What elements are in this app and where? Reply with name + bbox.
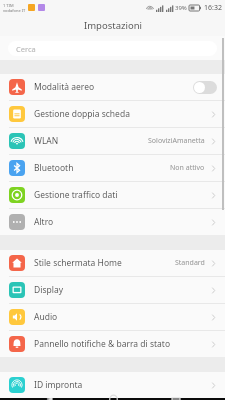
staticText: Stile schermata Home — [34, 257, 122, 269]
button[interactable]: Home — [98, 398, 128, 400]
staticText: Standard — [175, 258, 205, 268]
staticText: ID impronta — [34, 379, 83, 391]
button[interactable]: Display — [0, 277, 225, 303]
staticText: Audio — [34, 311, 58, 323]
staticText: 39% — [175, 4, 187, 12]
button[interactable]: Bluetooth — [0, 155, 225, 181]
button[interactable]: Recent apps — [161, 398, 191, 400]
staticText: Altro — [34, 216, 54, 228]
staticText: Gestione doppia scheda — [34, 108, 130, 120]
button[interactable]: Gestione doppia scheda — [0, 101, 225, 127]
staticText: 16:32 — [204, 3, 222, 13]
staticText: Bluetooth — [34, 162, 74, 174]
staticText: Gestione traffico dati — [34, 189, 118, 201]
staticText: Modalità aereo — [34, 81, 95, 93]
staticText: WLAN — [34, 135, 59, 147]
staticText: Pannello notifiche & barra di stato — [34, 338, 171, 350]
button[interactable]: Back — [34, 398, 64, 400]
staticText: Cerca — [16, 44, 36, 54]
button[interactable]: Gestione traffico dati — [0, 182, 225, 208]
staticText: Non attivo — [170, 163, 205, 173]
staticText: vodafone IT — [3, 8, 26, 13]
button[interactable]: Modalità aereo — [0, 74, 225, 100]
staticText: Impostazioni — [84, 19, 142, 32]
button[interactable]: Pannello notifiche & barra di stato — [0, 331, 225, 357]
button[interactable]: ID impronta — [0, 372, 225, 398]
button[interactable]: Cerca — [8, 41, 217, 56]
button[interactable]: Audio — [0, 304, 225, 330]
staticText: 1 TIM — [3, 3, 14, 8]
staticText: Display — [34, 284, 63, 296]
staticText: SoloviziAmanetta — [148, 136, 205, 146]
button[interactable]: Stile schermata Home — [0, 250, 225, 276]
button[interactable]: Altro — [0, 209, 225, 235]
button[interactable]: WLAN — [0, 128, 225, 154]
button[interactable]: Modalità aereo toggle — [193, 81, 217, 94]
